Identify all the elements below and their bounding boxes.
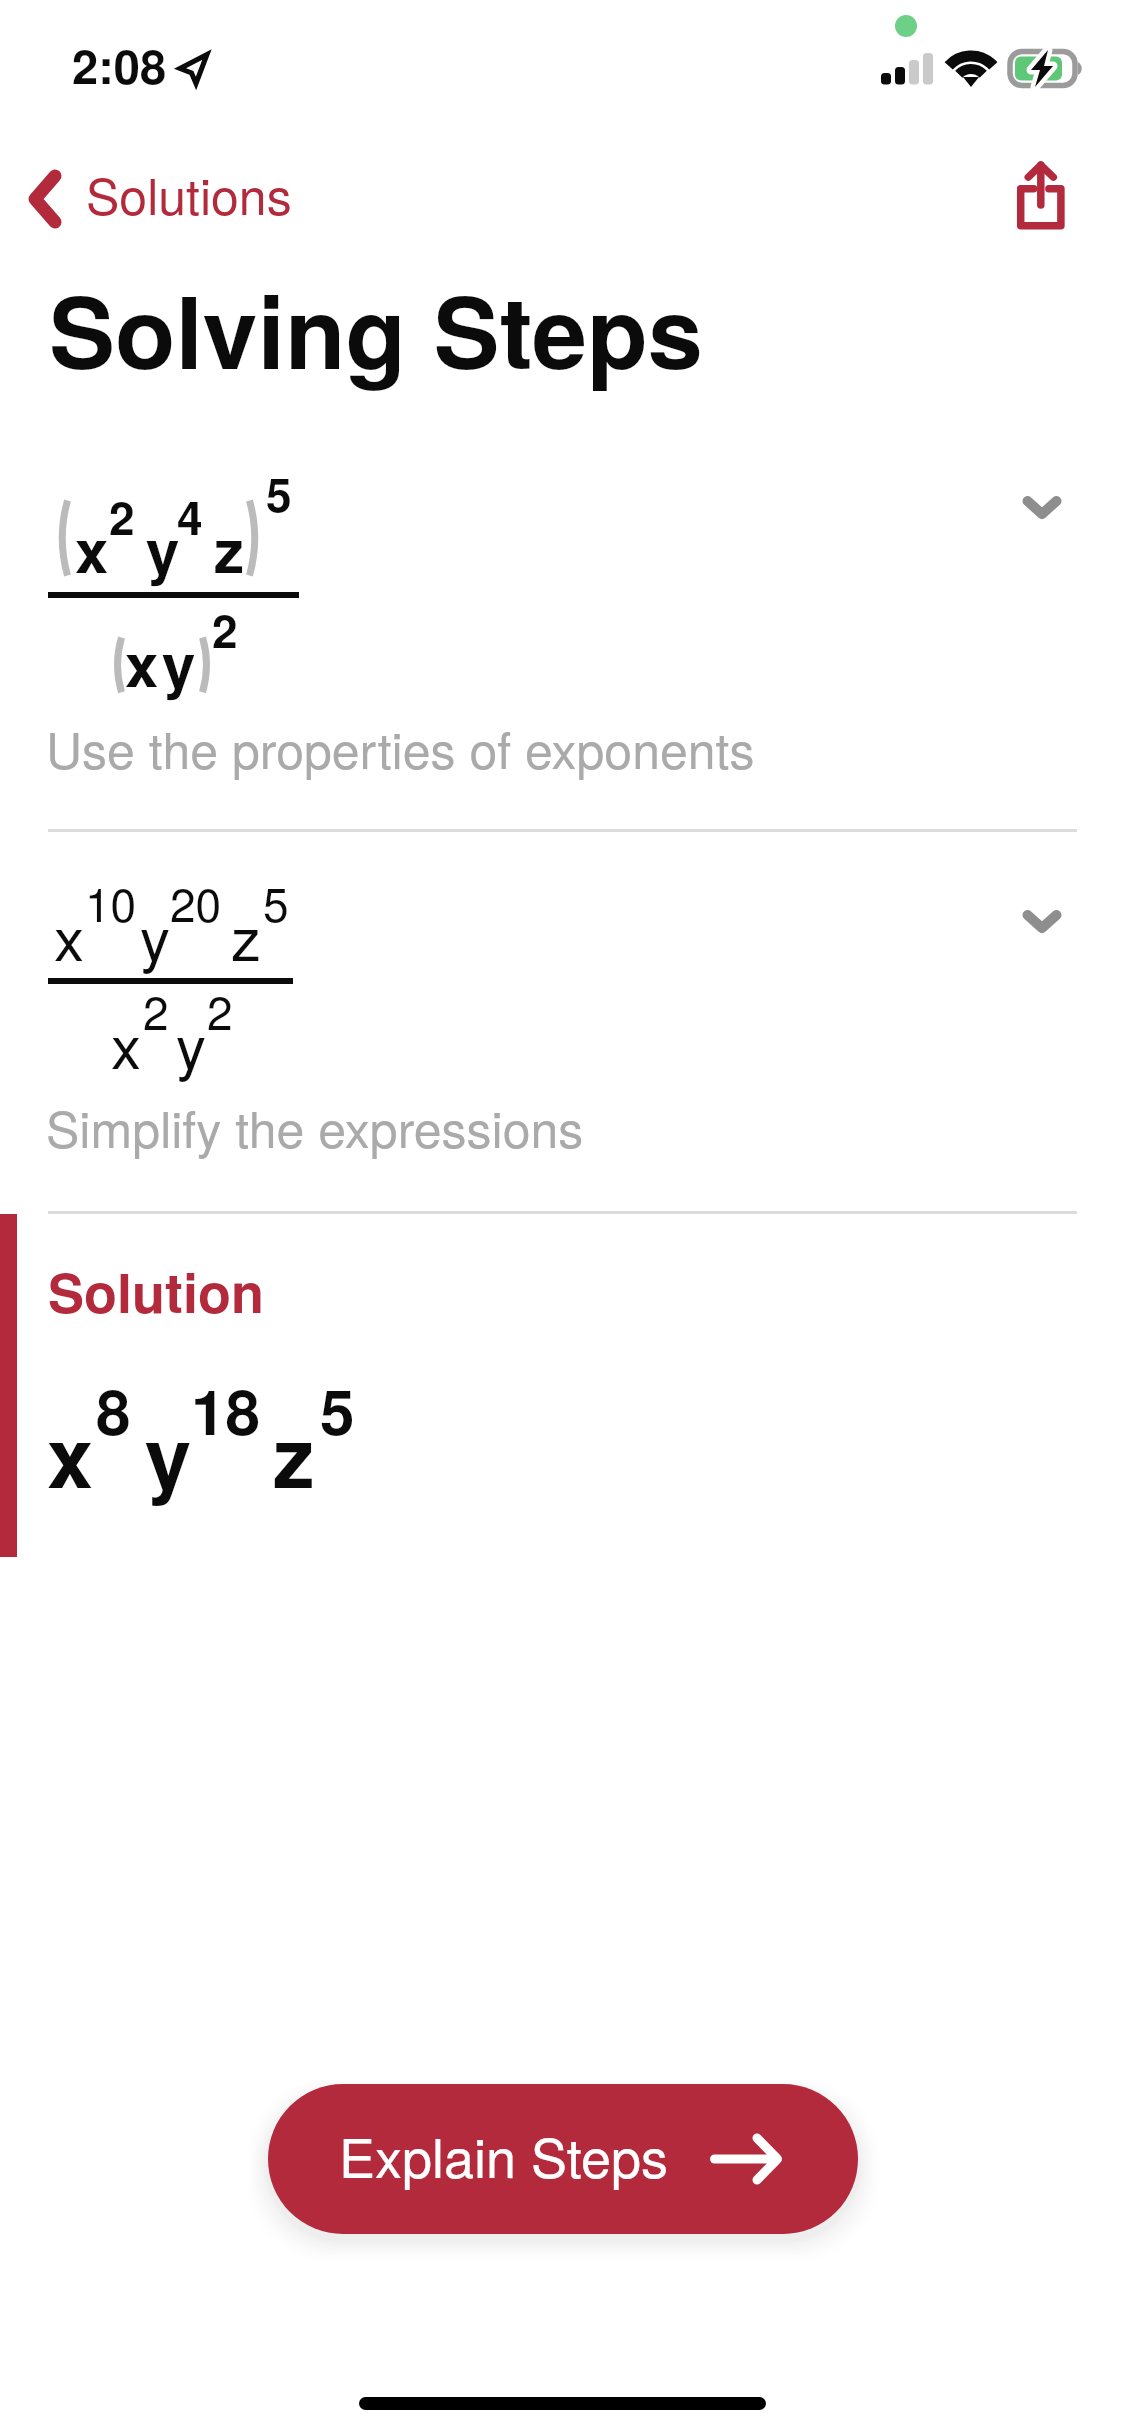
staticText: Use the properties of exponents bbox=[46, 712, 755, 784]
button[interactable]: Collapse step bbox=[984, 466, 1100, 546]
button[interactable]: Collapse step bbox=[984, 880, 1100, 960]
staticText: x bbox=[125, 619, 159, 705]
button[interactable] bbox=[0, 450, 1125, 830]
staticText: 20 bbox=[170, 869, 222, 935]
staticText: 2 bbox=[109, 483, 135, 549]
staticText: 5 bbox=[266, 460, 292, 526]
staticText: 10 bbox=[85, 869, 137, 935]
staticText: 4 bbox=[177, 483, 203, 549]
staticText: 5 bbox=[320, 1365, 355, 1454]
button[interactable]: Explain Steps bbox=[268, 2084, 858, 2234]
staticText: Explain Steps bbox=[339, 2116, 669, 2193]
staticText: y bbox=[146, 505, 180, 591]
staticText: 8 bbox=[96, 1365, 131, 1454]
staticText: 2 bbox=[212, 596, 238, 662]
staticText: 2 bbox=[143, 977, 169, 1043]
staticText: Solving Steps bbox=[49, 258, 703, 400]
staticText: Solution bbox=[48, 1252, 264, 1329]
staticText: x bbox=[54, 892, 84, 978]
staticText: 5 bbox=[263, 869, 289, 935]
staticText: y bbox=[145, 1395, 192, 1514]
staticText: x bbox=[47, 1395, 94, 1514]
button[interactable] bbox=[0, 845, 1125, 1210]
staticText: z bbox=[214, 505, 244, 591]
staticText: x bbox=[75, 505, 109, 591]
staticText: z bbox=[273, 1395, 315, 1514]
staticText: y bbox=[140, 892, 170, 978]
staticText: y bbox=[176, 1000, 206, 1086]
button[interactable]: Solutions bbox=[4, 148, 324, 252]
staticText: x bbox=[111, 1000, 141, 1086]
staticText: 2:08 bbox=[72, 31, 167, 98]
staticText: Solutions bbox=[86, 158, 292, 230]
staticText: 18 bbox=[191, 1365, 260, 1454]
staticText: Simplify the expressions bbox=[46, 1091, 584, 1163]
staticText: y bbox=[162, 619, 196, 705]
staticText: z bbox=[231, 892, 261, 978]
staticText: 2 bbox=[207, 977, 233, 1043]
button[interactable]: Share bbox=[987, 131, 1095, 251]
